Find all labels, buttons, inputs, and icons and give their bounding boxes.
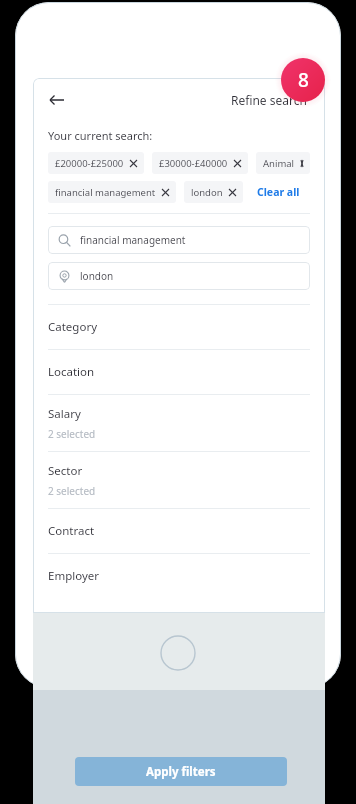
button[interactable]: financial management	[48, 181, 176, 203]
button[interactable]: london	[184, 181, 243, 203]
button[interactable]: Contract	[33, 509, 325, 553]
button[interactable]: Animal	[256, 152, 310, 174]
button[interactable]: Back	[41, 84, 73, 116]
staticText: £20000-£25000	[55, 157, 124, 170]
staticText: london	[191, 186, 223, 199]
staticText: Employer	[48, 568, 100, 584]
button[interactable]: london	[48, 262, 310, 290]
button[interactable]: Location	[33, 350, 325, 394]
staticText: financial management	[55, 186, 156, 199]
staticText: Animal	[263, 157, 295, 170]
staticText: 2 selected	[48, 427, 96, 441]
staticText: Location	[48, 364, 95, 380]
staticText: 2 selected	[48, 484, 96, 498]
staticText: 8	[298, 67, 309, 93]
staticText: Your current search:	[48, 128, 153, 143]
staticText: Contract	[48, 523, 95, 539]
button[interactable]: Salary	[33, 395, 325, 451]
staticText: Sector	[48, 463, 83, 479]
button[interactable]: Employer	[33, 554, 325, 598]
button[interactable]: 8 notifications	[281, 58, 325, 102]
staticText: Category	[48, 319, 98, 335]
staticText: Clear all	[257, 185, 300, 199]
button[interactable]: £20000-£25000	[48, 152, 144, 174]
button[interactable]: £30000-£40000	[152, 152, 248, 174]
button[interactable]: Sector	[33, 452, 325, 508]
staticText: Salary	[48, 406, 81, 422]
button[interactable]: financial management	[48, 226, 310, 254]
button[interactable]: Category	[33, 305, 325, 349]
button[interactable]: Apply filters	[75, 757, 287, 786]
staticText: £30000-£40000	[159, 157, 228, 170]
staticText: financial management	[80, 233, 186, 247]
staticText: london	[80, 269, 114, 283]
staticText: Refine search	[231, 92, 307, 108]
button[interactable]: Clear all	[255, 182, 302, 202]
staticText: Apply filters	[146, 764, 216, 780]
